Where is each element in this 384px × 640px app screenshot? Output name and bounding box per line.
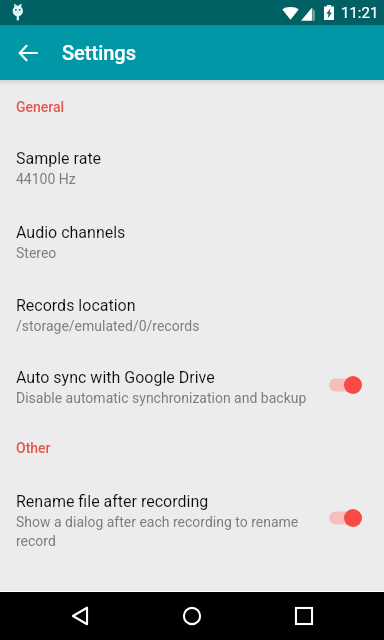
staticText: Auto sync with Google Drive bbox=[16, 368, 215, 387]
button[interactable]: Sample rate bbox=[0, 149, 384, 197]
staticText: Records location bbox=[16, 296, 136, 315]
button[interactable] bbox=[327, 373, 365, 397]
button[interactable]: Recent apps bbox=[280, 592, 328, 640]
staticText: General bbox=[16, 99, 65, 115]
button[interactable]: Rename file after recording bbox=[0, 492, 384, 562]
staticText: Other bbox=[16, 440, 51, 456]
button[interactable]: Back bbox=[4, 29, 52, 77]
button[interactable]: Records location bbox=[0, 296, 384, 344]
staticText: Sample rate bbox=[16, 149, 102, 168]
staticText: Show a dialog after each recording to re… bbox=[16, 514, 308, 549]
button[interactable]: Audio channels bbox=[0, 223, 384, 271]
staticText: Settings bbox=[62, 41, 137, 64]
staticText: 11:21 bbox=[341, 4, 379, 22]
staticText: Disable automatic synchronization and ba… bbox=[16, 390, 307, 406]
button[interactable] bbox=[327, 506, 365, 530]
staticText: Audio channels bbox=[16, 223, 126, 242]
button[interactable]: Back bbox=[56, 592, 104, 640]
button[interactable]: Auto sync with Google Drive bbox=[0, 368, 384, 428]
staticText: 44100 Hz bbox=[16, 171, 76, 187]
staticText: /storage/emulated/0/records bbox=[16, 318, 200, 334]
staticText: Stereo bbox=[16, 245, 57, 261]
button[interactable]: Home bbox=[168, 592, 216, 640]
staticText: Rename file after recording bbox=[16, 492, 209, 511]
